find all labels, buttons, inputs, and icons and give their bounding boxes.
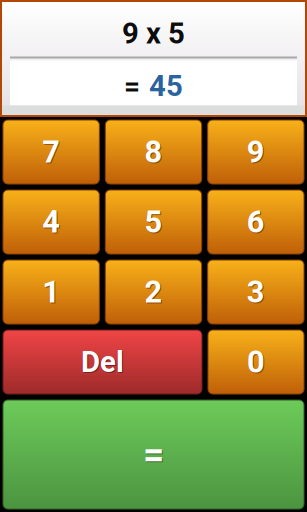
staticText: = (143, 433, 164, 476)
button[interactable]: 9 (208, 120, 304, 184)
staticText: 2 (145, 275, 163, 311)
button[interactable]: 5 (105, 190, 202, 254)
button[interactable]: 0 (208, 330, 304, 394)
staticText: 8 (145, 135, 163, 171)
staticText: 2 (144, 274, 162, 310)
staticText: 1 (43, 275, 61, 311)
button[interactable]: 7 (3, 120, 99, 184)
staticText: = (124, 70, 140, 102)
button[interactable]: 4 (3, 190, 99, 254)
staticText: 45 (149, 69, 183, 103)
button[interactable]: 6 (208, 190, 304, 254)
staticText: 0 (247, 344, 265, 380)
staticText: 4 (43, 205, 61, 241)
staticText: 4 (42, 204, 60, 240)
staticText: 5 (144, 204, 162, 240)
staticText: 7 (43, 135, 61, 171)
button[interactable]: 3 (208, 260, 304, 324)
staticText: = (144, 434, 165, 477)
staticText: 1 (42, 274, 60, 310)
staticText: 7 (42, 134, 60, 170)
staticText: 9 x 5 (122, 16, 185, 51)
staticText: Del (81, 345, 124, 379)
button[interactable]: 2 (105, 260, 202, 324)
staticText: 9 (247, 134, 265, 170)
staticText: 8 (144, 134, 162, 170)
staticText: 9 (248, 135, 266, 171)
staticText: 3 (247, 274, 265, 310)
button[interactable]: = (3, 400, 304, 509)
staticText: 6 (247, 204, 265, 240)
staticText: Del (82, 346, 125, 380)
staticText: 3 (248, 275, 266, 311)
staticText: 6 (248, 205, 266, 241)
staticText: 5 (145, 205, 163, 241)
staticText: 0 (248, 345, 266, 381)
button[interactable]: 1 (3, 260, 99, 324)
button[interactable]: Del (3, 330, 202, 394)
button[interactable]: 8 (105, 120, 202, 184)
